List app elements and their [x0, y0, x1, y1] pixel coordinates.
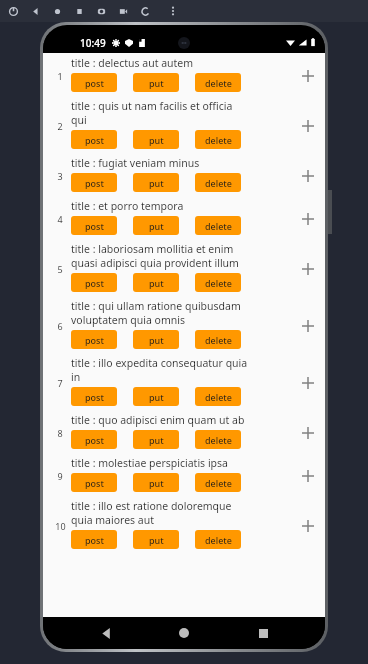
button[interactable]: post: [71, 430, 117, 449]
button[interactable]: delete: [195, 430, 241, 449]
button[interactable]: put: [133, 430, 179, 449]
staticText: put: [149, 477, 164, 489]
button[interactable]: Home: [168, 617, 200, 649]
button[interactable]: Add: [295, 463, 321, 489]
staticText: title : delectus aut autem: [71, 56, 194, 70]
staticText: delete: [205, 77, 232, 89]
staticText: put: [149, 77, 164, 89]
button[interactable]: Add: [295, 113, 321, 139]
button[interactable]: post: [71, 530, 117, 549]
staticText: post: [85, 534, 104, 546]
button[interactable]: 7: [43, 353, 325, 410]
button[interactable]: Screenshot: [90, 0, 112, 22]
button[interactable]: 2: [43, 96, 325, 153]
button[interactable]: Back: [90, 617, 122, 649]
button[interactable]: post: [71, 330, 117, 349]
staticText: qui: [71, 113, 87, 127]
staticText: 3: [57, 170, 63, 182]
button[interactable]: put: [133, 273, 179, 292]
button[interactable]: Rotate: [134, 0, 156, 22]
staticText: post: [85, 434, 104, 446]
button[interactable]: put: [133, 330, 179, 349]
button[interactable]: Back: [24, 0, 46, 22]
button[interactable]: Recent apps: [247, 617, 279, 649]
staticText: quasi adipisci quia provident illum: [71, 256, 239, 270]
button[interactable]: put: [133, 173, 179, 192]
button[interactable]: delete: [195, 330, 241, 349]
button[interactable]: post: [71, 216, 117, 235]
staticText: 6: [57, 320, 63, 332]
staticText: delete: [205, 220, 232, 232]
staticText: title : qui ullam ratione quibusdam: [71, 299, 241, 313]
button[interactable]: Record: [112, 0, 134, 22]
button[interactable]: delete: [195, 273, 241, 292]
staticText: put: [149, 334, 164, 346]
button[interactable]: Overview: [68, 0, 90, 22]
button[interactable]: delete: [195, 130, 241, 149]
staticText: delete: [205, 434, 232, 446]
staticText: post: [85, 220, 104, 232]
staticText: put: [149, 534, 164, 546]
staticText: title : illo est ratione doloremque: [71, 499, 232, 513]
staticText: 10:49: [80, 36, 106, 50]
button[interactable]: Add: [295, 370, 321, 396]
staticText: 5: [57, 263, 63, 275]
button[interactable]: delete: [195, 387, 241, 406]
button[interactable]: 4: [43, 196, 325, 239]
button[interactable]: delete: [195, 73, 241, 92]
staticText: post: [85, 477, 104, 489]
button[interactable]: delete: [195, 473, 241, 492]
button[interactable]: Add: [295, 420, 321, 446]
button[interactable]: Home: [46, 0, 68, 22]
button[interactable]: Add: [295, 513, 321, 539]
button[interactable]: Add: [295, 313, 321, 339]
button[interactable]: post: [71, 473, 117, 492]
button[interactable]: put: [133, 130, 179, 149]
staticText: 7: [57, 377, 63, 389]
staticText: put: [149, 277, 164, 289]
button[interactable]: delete: [195, 173, 241, 192]
button[interactable]: 3: [43, 153, 325, 196]
staticText: title : et porro tempora: [71, 199, 184, 213]
staticText: in: [71, 370, 81, 384]
button[interactable]: put: [133, 387, 179, 406]
staticText: 4: [57, 213, 63, 225]
staticText: title : quis ut nam facilis et officia: [71, 99, 233, 113]
staticText: post: [85, 134, 104, 146]
button[interactable]: Add: [295, 63, 321, 89]
button[interactable]: put: [133, 216, 179, 235]
button[interactable]: delete: [195, 216, 241, 235]
staticText: 9: [57, 470, 63, 482]
button[interactable]: Add: [295, 163, 321, 189]
button[interactable]: post: [71, 73, 117, 92]
button[interactable]: put: [133, 530, 179, 549]
staticText: title : laboriosam mollitia et enim: [71, 242, 234, 256]
button[interactable]: post: [71, 387, 117, 406]
staticText: 2: [57, 120, 63, 132]
button[interactable]: Add: [295, 256, 321, 282]
button[interactable]: 5: [43, 239, 325, 296]
button[interactable]: delete: [195, 530, 241, 549]
staticText: put: [149, 391, 164, 403]
staticText: title : illo expedita consequatur quia: [71, 356, 248, 370]
staticText: 10: [55, 520, 66, 532]
button[interactable]: More options: [164, 2, 182, 20]
button[interactable]: post: [71, 130, 117, 149]
button[interactable]: Add: [295, 206, 321, 232]
button[interactable]: Power: [2, 0, 24, 22]
button[interactable]: 6: [43, 296, 325, 353]
button[interactable]: 1: [43, 53, 325, 96]
staticText: delete: [205, 334, 232, 346]
button[interactable]: put: [133, 473, 179, 492]
staticText: put: [149, 220, 164, 232]
staticText: delete: [205, 534, 232, 546]
button[interactable]: 10: [43, 496, 325, 553]
button[interactable]: 8: [43, 410, 325, 453]
button[interactable]: 9: [43, 453, 325, 496]
button[interactable]: post: [71, 273, 117, 292]
staticText: post: [85, 177, 104, 189]
button[interactable]: put: [133, 73, 179, 92]
button[interactable]: post: [71, 173, 117, 192]
staticText: title : quo adipisci enim quam ut ab: [71, 413, 245, 427]
staticText: put: [149, 434, 164, 446]
